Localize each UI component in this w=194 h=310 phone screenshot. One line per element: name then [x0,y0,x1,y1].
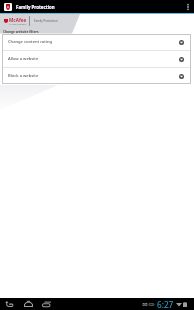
button[interactable]: Expand [178,56,184,62]
button[interactable]: Expand [178,39,184,45]
staticText: An Intel Company [9,23,27,26]
button[interactable]: Recent apps [40,298,52,310]
button[interactable]: Allow a website [2,51,191,67]
button[interactable]: Block a website [2,68,191,84]
staticText: Change website filters [3,30,39,34]
button[interactable]: Back [3,298,15,310]
staticText: Allow a website [8,56,39,62]
staticText: McAfee [9,17,27,23]
staticText: Family Protection [34,19,58,23]
button[interactable]: Change content rating [2,34,191,50]
staticText: Family Protection [16,4,55,10]
staticText: Change content rating [8,39,52,45]
button[interactable]: Home [22,298,34,310]
button[interactable]: More options [182,0,194,13]
staticText: Block a website [8,73,39,79]
button[interactable]: Expand [178,73,184,79]
staticText: 6:27 [157,299,174,310]
